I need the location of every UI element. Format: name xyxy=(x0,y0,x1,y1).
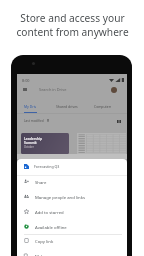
button[interactable]: Copy link xyxy=(17,233,127,248)
button[interactable]: Share xyxy=(17,174,127,189)
staticText: Store and access your xyxy=(20,11,125,25)
staticText: Make a copy xyxy=(35,253,60,256)
staticText: Leadership xyxy=(24,136,43,140)
staticText: Copy link xyxy=(35,238,54,244)
staticText: Add to starred xyxy=(35,209,64,215)
staticText: Summit xyxy=(24,140,37,144)
button[interactable]: Forecasting Q3 xyxy=(17,161,127,172)
button[interactable]: Leadership xyxy=(21,133,69,154)
button[interactable]: Computers xyxy=(94,100,111,113)
staticText: Share xyxy=(35,179,47,185)
staticText: October xyxy=(24,145,34,149)
button[interactable] xyxy=(77,133,126,154)
button[interactable]: Available offline xyxy=(17,219,127,234)
button[interactable]: Account xyxy=(111,87,117,93)
staticText: Last modified xyxy=(24,119,44,123)
staticText: Manage people and links xyxy=(35,194,86,200)
staticText: Available offline xyxy=(35,224,67,230)
staticText: Shared drives xyxy=(56,104,78,109)
button[interactable]: Last modified xyxy=(24,118,49,123)
button[interactable]: Switch to grid view xyxy=(117,120,121,123)
button[interactable]: Shared drives xyxy=(55,100,78,113)
staticText: Computers xyxy=(94,104,111,109)
staticText: My Drive xyxy=(24,104,36,109)
button[interactable]: Add to starred xyxy=(17,204,127,219)
button[interactable]: Search in Drive xyxy=(39,87,67,92)
staticText: Forecasting Q3 xyxy=(34,164,60,169)
staticText: content from anywhere xyxy=(16,25,129,39)
button[interactable]: My Drive xyxy=(24,100,36,113)
button[interactable]: Make a copy xyxy=(17,248,127,256)
button[interactable]: Manage people and links xyxy=(17,189,127,204)
staticText: 8:00 xyxy=(22,78,30,83)
